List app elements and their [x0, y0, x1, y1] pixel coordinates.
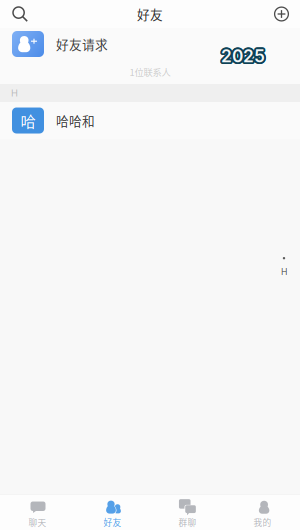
staticText: 2025 [223, 45, 267, 66]
button[interactable]: Search [0, 0, 34, 28]
staticText: 哈哈和 [56, 111, 95, 130]
staticText: 2025 [222, 44, 266, 65]
staticText: 2025 [222, 47, 266, 68]
staticText: 2025 [221, 45, 265, 66]
button[interactable]: Add friend [268, 0, 300, 27]
button[interactable]: 聊天 [0, 494, 75, 530]
staticText: 2025 [219, 46, 263, 67]
staticText: 2025 [220, 44, 264, 65]
staticText: 2025 [220, 44, 264, 65]
staticText: 2025 [219, 45, 263, 66]
staticText: H [281, 267, 287, 277]
staticText: 好友 [137, 5, 163, 23]
staticText: 2025 [223, 46, 267, 67]
staticText: 群聊 [178, 516, 196, 528]
staticText: 哈 [20, 109, 35, 132]
staticText: 2025 [220, 47, 264, 68]
staticText: 2025 [222, 47, 266, 68]
staticText: 好友 [103, 516, 121, 528]
staticText: H [11, 87, 18, 99]
button[interactable]: 好友请求 [0, 28, 300, 60]
button[interactable]: 好友 [75, 494, 150, 530]
button[interactable]: 群聊 [150, 494, 225, 530]
staticText: 我的 [253, 516, 271, 528]
staticText: 2025 [220, 47, 264, 68]
staticText: 2025 [222, 44, 266, 65]
button[interactable]: 我的 [225, 494, 300, 530]
staticText: 2025 [221, 44, 265, 65]
staticText: 2025 [219, 45, 263, 66]
staticText: 好友请求 [56, 35, 108, 53]
staticText: 2025 [223, 45, 267, 66]
staticText: 聊天 [28, 516, 46, 528]
staticText: 2025 [221, 47, 265, 68]
staticText: 1位联系人 [129, 65, 170, 79]
button[interactable]: 哈 [0, 102, 300, 139]
